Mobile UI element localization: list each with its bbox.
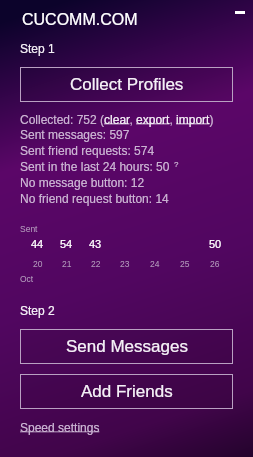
button[interactable]: Minimize bbox=[228, 4, 252, 21]
staticText: Send Messages bbox=[66, 337, 188, 356]
staticText: 43 bbox=[89, 238, 102, 250]
staticText: Oct bbox=[20, 274, 34, 283]
button[interactable]: Collect Profiles bbox=[20, 67, 233, 102]
staticText: 44 bbox=[31, 238, 44, 250]
staticText: Collect Profiles bbox=[70, 75, 184, 94]
staticText: Sent bbox=[20, 224, 38, 233]
staticText: No message button: 12 bbox=[20, 176, 145, 189]
staticText: 22 bbox=[91, 259, 101, 268]
staticText: CUCOMM.COM bbox=[22, 11, 138, 29]
staticText: Sent messages: 597 bbox=[20, 128, 130, 141]
staticText: Sent in the last 24 hours: 50 ? bbox=[20, 160, 179, 173]
staticText: 26 bbox=[210, 259, 220, 268]
staticText: Speed settings bbox=[20, 421, 100, 434]
staticText: 23 bbox=[120, 259, 130, 268]
staticText: 50 bbox=[209, 238, 222, 250]
button[interactable]: Add Friends bbox=[20, 374, 233, 409]
staticText: 21 bbox=[62, 259, 72, 268]
staticText: Sent friend requests: 574 bbox=[20, 144, 155, 157]
button[interactable]: Send Messages bbox=[20, 329, 233, 364]
staticText: 54 bbox=[60, 238, 73, 250]
staticText: Add Friends bbox=[81, 382, 173, 401]
staticText: Step 1 bbox=[20, 42, 55, 55]
staticText: 24 bbox=[150, 259, 160, 268]
button[interactable]: Speed settings bbox=[20, 421, 100, 434]
staticText: Step 2 bbox=[20, 304, 55, 317]
staticText: No friend request button: 14 bbox=[20, 192, 169, 205]
staticText: Collected: 752 (clear, export, import) bbox=[20, 113, 214, 126]
staticText: 20 bbox=[33, 259, 43, 268]
staticText: 25 bbox=[180, 259, 190, 268]
